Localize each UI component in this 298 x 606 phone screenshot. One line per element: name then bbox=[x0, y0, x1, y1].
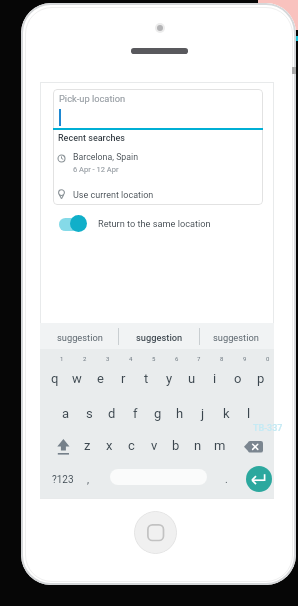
staticText: j bbox=[201, 406, 205, 421]
button[interactable]: p bbox=[231, 366, 291, 390]
staticText: suggestion bbox=[57, 332, 103, 343]
staticText: 6 Apr - 12 Apr bbox=[73, 165, 119, 174]
staticText: a bbox=[62, 406, 70, 421]
staticText: suggestion bbox=[136, 332, 183, 343]
staticText: l bbox=[247, 406, 251, 421]
staticText: 3 bbox=[106, 355, 110, 362]
staticText: w bbox=[72, 371, 82, 386]
staticText: Recent searches bbox=[58, 133, 125, 144]
staticText: 8 bbox=[220, 355, 224, 362]
staticText: 1 bbox=[60, 355, 64, 362]
button[interactable]: , bbox=[58, 467, 118, 491]
staticText: e bbox=[97, 371, 104, 386]
button[interactable]: t bbox=[116, 366, 176, 390]
staticText: Use current location bbox=[73, 190, 154, 201]
button[interactable]: k bbox=[196, 401, 256, 425]
button[interactable]: j bbox=[173, 401, 233, 425]
button[interactable]: r bbox=[93, 366, 153, 390]
staticText: c bbox=[128, 438, 135, 453]
staticText: 5 bbox=[152, 355, 156, 362]
staticText: d bbox=[108, 406, 116, 421]
staticText: x bbox=[106, 438, 113, 453]
staticText: h bbox=[176, 406, 184, 421]
button[interactable] bbox=[53, 89, 263, 205]
button[interactable]: v bbox=[124, 433, 184, 457]
button[interactable]: h bbox=[150, 401, 210, 425]
button[interactable]: x bbox=[79, 433, 139, 457]
button[interactable]: n bbox=[168, 433, 228, 457]
staticText: v bbox=[151, 438, 158, 453]
button[interactable]: ?123 bbox=[33, 468, 93, 492]
button[interactable]: w bbox=[47, 366, 107, 390]
button[interactable]: s bbox=[59, 401, 119, 425]
button[interactable]: c bbox=[101, 433, 161, 457]
button[interactable] bbox=[70, 186, 260, 204]
staticText: u bbox=[188, 371, 196, 386]
button[interactable]: u bbox=[162, 366, 222, 390]
button[interactable]: b bbox=[146, 433, 206, 457]
button[interactable]: d bbox=[82, 401, 142, 425]
staticText: 4 bbox=[129, 355, 133, 362]
button[interactable] bbox=[134, 511, 177, 554]
staticText: Return to the same location bbox=[98, 218, 211, 229]
staticText: i bbox=[213, 371, 217, 386]
staticText: o bbox=[234, 371, 242, 386]
button[interactable] bbox=[57, 439, 70, 455]
staticText: , bbox=[87, 473, 90, 485]
button[interactable]: i bbox=[185, 366, 245, 390]
button[interactable]: y bbox=[139, 366, 199, 390]
staticText: q bbox=[51, 371, 59, 386]
staticText: 6 bbox=[175, 355, 179, 362]
staticText: . bbox=[225, 473, 228, 485]
button[interactable] bbox=[70, 150, 260, 176]
staticText: b bbox=[172, 438, 180, 453]
staticText: f bbox=[133, 406, 138, 421]
button[interactable]: g bbox=[128, 401, 188, 425]
button[interactable]: a bbox=[36, 401, 96, 425]
staticText: g bbox=[154, 406, 162, 421]
button[interactable]: e bbox=[70, 366, 130, 390]
button[interactable] bbox=[244, 441, 263, 453]
staticText: m bbox=[214, 438, 226, 453]
button[interactable]: suggestion bbox=[129, 325, 189, 349]
button[interactable] bbox=[246, 466, 272, 492]
staticText: t bbox=[144, 371, 149, 386]
staticText: z bbox=[84, 438, 91, 453]
staticText: Pick-up location bbox=[59, 93, 126, 104]
staticText: ?123 bbox=[52, 474, 74, 486]
button[interactable]: suggestion bbox=[206, 325, 266, 349]
staticText: 0 bbox=[266, 355, 270, 362]
button[interactable]: suggestion bbox=[50, 325, 110, 349]
staticText: y bbox=[166, 371, 173, 386]
staticText: r bbox=[121, 371, 126, 386]
button[interactable]: m bbox=[190, 433, 250, 457]
button[interactable]: f bbox=[105, 401, 165, 425]
staticText: p bbox=[257, 371, 265, 386]
staticText: k bbox=[223, 406, 230, 421]
button[interactable]: q bbox=[25, 366, 85, 390]
staticText: s bbox=[86, 406, 93, 421]
button[interactable]: l bbox=[219, 401, 279, 425]
button[interactable]: . bbox=[196, 467, 256, 491]
staticText: suggestion bbox=[213, 332, 259, 343]
button[interactable]: z bbox=[57, 433, 117, 457]
button[interactable] bbox=[53, 212, 261, 236]
staticText: Barcelona, Spain bbox=[73, 152, 139, 162]
staticText: n bbox=[194, 438, 202, 453]
staticText: 7 bbox=[197, 355, 201, 362]
button[interactable]: o bbox=[208, 366, 268, 390]
staticText: 2 bbox=[83, 355, 87, 362]
staticText: 9 bbox=[243, 355, 247, 362]
staticText: TB-337 bbox=[253, 423, 283, 434]
